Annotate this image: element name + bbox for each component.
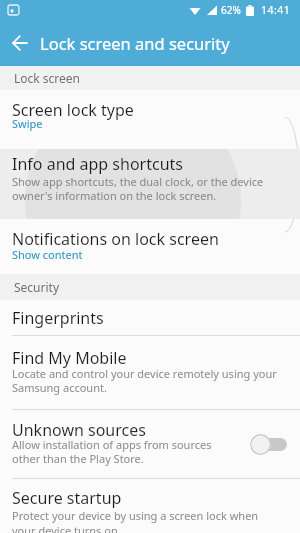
staticText: Show content: [12, 247, 83, 262]
staticText: Lock screen and security: [40, 32, 230, 54]
staticText: Locate and control your device remotely …: [12, 366, 277, 381]
button[interactable]: Screen lock type: [0, 90, 300, 149]
button[interactable]: Fingerprints: [0, 300, 300, 335]
staticText: Swipe: [12, 116, 43, 131]
staticText: other than the Play Store.: [12, 451, 144, 466]
staticText: Allow installation of apps from sources: [12, 437, 212, 452]
staticText: Unknown sources: [12, 419, 146, 441]
staticText: Lock screen: [14, 70, 81, 86]
staticText: Show app shortcuts, the dual clock, or t…: [12, 174, 264, 189]
button[interactable]: Unknown sources: [0, 410, 300, 478]
staticText: Info and app shortcuts: [12, 153, 183, 175]
staticText: Find My Mobile: [12, 347, 127, 369]
staticText: your device turns on: [12, 523, 118, 533]
staticText: Notifications on lock screen: [12, 228, 219, 250]
staticText: Fingerprints: [12, 307, 104, 329]
staticText: 62%: [221, 3, 241, 17]
staticText: Protect your device by using a screen lo…: [12, 508, 259, 523]
button[interactable]: Notifications on lock screen: [0, 219, 300, 274]
staticText: Security: [14, 279, 60, 295]
staticText: 14:41: [261, 3, 291, 17]
staticText: Screen lock type: [12, 99, 134, 121]
button[interactable]: Info and app shortcuts: [0, 149, 300, 219]
staticText: Samsung account.: [12, 380, 107, 395]
button[interactable]: Find My Mobile: [0, 336, 300, 409]
button[interactable]: Secure startup: [0, 479, 300, 533]
staticText: Secure startup: [12, 487, 122, 509]
staticText: owner's information on the lock screen.: [12, 188, 217, 203]
button[interactable]: Lock screen and security: [0, 20, 300, 66]
